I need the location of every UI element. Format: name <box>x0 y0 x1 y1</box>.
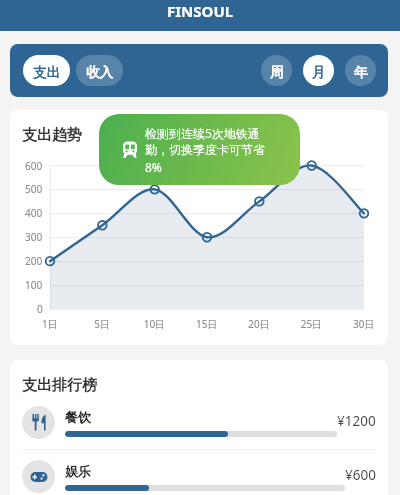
button[interactable]: 月 <box>303 55 334 86</box>
staticText: 支出 <box>33 64 60 81</box>
staticText: 年 <box>354 64 368 81</box>
staticText: ¥1200 <box>337 412 376 430</box>
button[interactable]: 周 <box>261 55 292 86</box>
button[interactable]: 年 <box>345 55 376 86</box>
button[interactable]: 检测到连续5次地铁通勤，切换季度卡可节省8% <box>99 114 300 185</box>
staticText: 周 <box>270 64 284 81</box>
button[interactable]: 收入 <box>76 55 123 86</box>
staticText: 餐饮 <box>65 409 91 425</box>
staticText: 支出趋势 <box>22 126 82 145</box>
staticText: 检测到连续5次地铁通勤，切换季度卡可节省8% <box>145 125 265 175</box>
button[interactable]: 支出 <box>23 55 70 86</box>
staticText: 娱乐 <box>65 463 91 479</box>
staticText: ¥600 <box>345 466 376 484</box>
staticText: 月 <box>312 64 326 81</box>
button[interactable]: 餐饮 <box>10 396 388 449</box>
staticText: FINSOUL <box>167 1 234 21</box>
staticText: 支出排行榜 <box>22 376 97 395</box>
button[interactable]: 娱乐 <box>10 450 388 495</box>
staticText: 收入 <box>86 64 113 81</box>
